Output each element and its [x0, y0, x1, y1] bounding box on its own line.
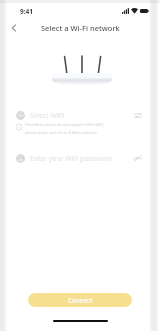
staticText: Connect [68, 296, 93, 304]
button[interactable]: Back [5, 19, 23, 37]
button[interactable]: Enter your WiFi password [16, 150, 142, 167]
staticText: Enter your WiFi password [30, 154, 112, 163]
staticText: Select a Wi-Fi network [41, 23, 120, 33]
button[interactable]: Connect [28, 293, 132, 307]
staticText: HomeRun device do not support 5Ghz WiFi,… [25, 122, 105, 135]
button[interactable]: Select WiFi [16, 107, 142, 124]
other: Show password [133, 155, 142, 162]
other: Scan networks [134, 112, 142, 119]
staticText: Select WiFi [30, 111, 64, 120]
staticText: 9:41 [20, 7, 33, 16]
